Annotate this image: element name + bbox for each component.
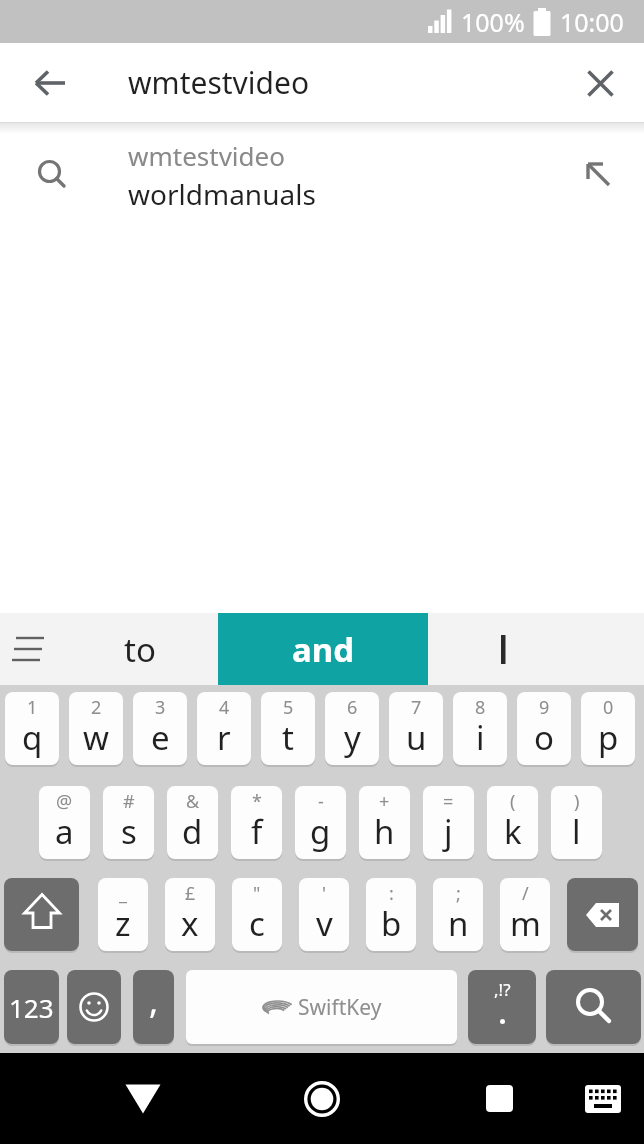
button[interactable]: ' [299, 878, 349, 951]
button[interactable] [567, 878, 638, 951]
staticText: m [510, 901, 541, 946]
button[interactable]: 0 [581, 692, 635, 765]
staticText: 7 [411, 695, 422, 720]
staticText: : [389, 881, 394, 906]
staticText: 10:00 [560, 5, 624, 39]
button[interactable] [578, 1074, 628, 1124]
staticText: _ [119, 881, 127, 906]
staticText: t [282, 715, 294, 760]
staticText: £ [185, 881, 196, 906]
staticText: n [448, 901, 469, 946]
staticText: 3 [155, 695, 166, 720]
staticText: g [310, 809, 331, 854]
button[interactable] [580, 63, 620, 103]
button[interactable]: _ [98, 878, 148, 951]
button[interactable]: / [500, 878, 550, 951]
button[interactable]: ) [551, 786, 602, 859]
button[interactable]: & [167, 786, 218, 859]
button[interactable] [475, 1074, 525, 1124]
staticText: r [217, 715, 231, 760]
button[interactable]: = [423, 786, 474, 859]
staticText: l [572, 809, 581, 854]
staticText: wmtestvideo [128, 138, 285, 173]
button[interactable]: - [295, 786, 346, 859]
button[interactable]: * [231, 786, 282, 859]
button[interactable]: £ [165, 878, 215, 951]
staticText: , [149, 978, 159, 1024]
staticText: 1 [27, 695, 38, 720]
staticText: i [476, 715, 485, 760]
staticText: / [522, 881, 529, 906]
staticText: u [406, 715, 427, 760]
button[interactable] [67, 970, 121, 1044]
staticText: x [181, 901, 199, 946]
button[interactable]: 9 [517, 692, 571, 765]
staticText: a [55, 809, 74, 854]
button[interactable]: to [62, 613, 218, 685]
button[interactable]: 4 [197, 692, 251, 765]
button[interactable]: wmtestvideo [0, 134, 644, 216]
button[interactable]: # [103, 786, 154, 859]
staticText: b [381, 901, 402, 946]
button[interactable]: 1 [5, 692, 59, 765]
button[interactable]: SwiftKey [186, 970, 457, 1044]
button[interactable]: " [232, 878, 282, 951]
button[interactable]: : [366, 878, 416, 951]
staticText: ,!? [494, 978, 511, 1001]
button[interactable]: + [359, 786, 410, 859]
button[interactable]: ,!? [468, 970, 536, 1044]
button[interactable]: 6 [325, 692, 379, 765]
staticText: v [316, 901, 333, 946]
staticText: 9 [539, 695, 550, 720]
staticText: & [186, 789, 200, 814]
staticText: j [444, 809, 453, 854]
button[interactable] [118, 1074, 168, 1124]
button[interactable]: 5 [261, 692, 315, 765]
button[interactable]: ; [433, 878, 483, 951]
staticText: z [115, 901, 131, 946]
staticText: " [253, 881, 261, 906]
staticText: p [598, 715, 619, 760]
button[interactable]: and [218, 613, 428, 685]
staticText: 100% [461, 5, 525, 39]
staticText: SwiftKey [298, 993, 382, 1022]
staticText: # [123, 789, 135, 814]
staticText: s [121, 809, 137, 854]
staticText: h [374, 809, 395, 854]
button[interactable] [297, 1074, 347, 1124]
staticText: e [151, 715, 170, 760]
staticText: d [182, 809, 203, 854]
button[interactable] [30, 63, 70, 103]
staticText: wmtestvideo [128, 62, 310, 103]
button[interactable]: @ [39, 786, 90, 859]
button[interactable]: , [133, 970, 174, 1044]
staticText: k [504, 809, 522, 854]
button[interactable]: ( [487, 786, 538, 859]
staticText: y [344, 715, 361, 760]
staticText: 8 [475, 695, 486, 720]
staticText: to [124, 627, 156, 672]
staticText: f [251, 809, 263, 854]
button[interactable] [4, 878, 79, 951]
staticText: 0 [603, 695, 614, 720]
staticText: = [443, 789, 454, 814]
button[interactable]: 3 [133, 692, 187, 765]
button[interactable]: 8 [453, 692, 507, 765]
staticText: ( [510, 789, 516, 814]
staticText: w [83, 715, 109, 760]
staticText: worldmanuals [128, 175, 316, 213]
button[interactable]: 123 [4, 970, 59, 1044]
staticText: ; [456, 881, 461, 906]
staticText: ) [574, 789, 580, 814]
staticText: 5 [283, 695, 294, 720]
button[interactable]: 2 [69, 692, 123, 765]
staticText: 4 [219, 695, 230, 720]
button[interactable] [546, 970, 641, 1044]
staticText: c [249, 901, 265, 946]
staticText: and [292, 627, 355, 672]
staticText: q [22, 715, 43, 760]
button[interactable] [428, 613, 578, 685]
staticText: ' [322, 881, 327, 906]
staticText: @ [56, 789, 73, 814]
button[interactable]: 7 [389, 692, 443, 765]
